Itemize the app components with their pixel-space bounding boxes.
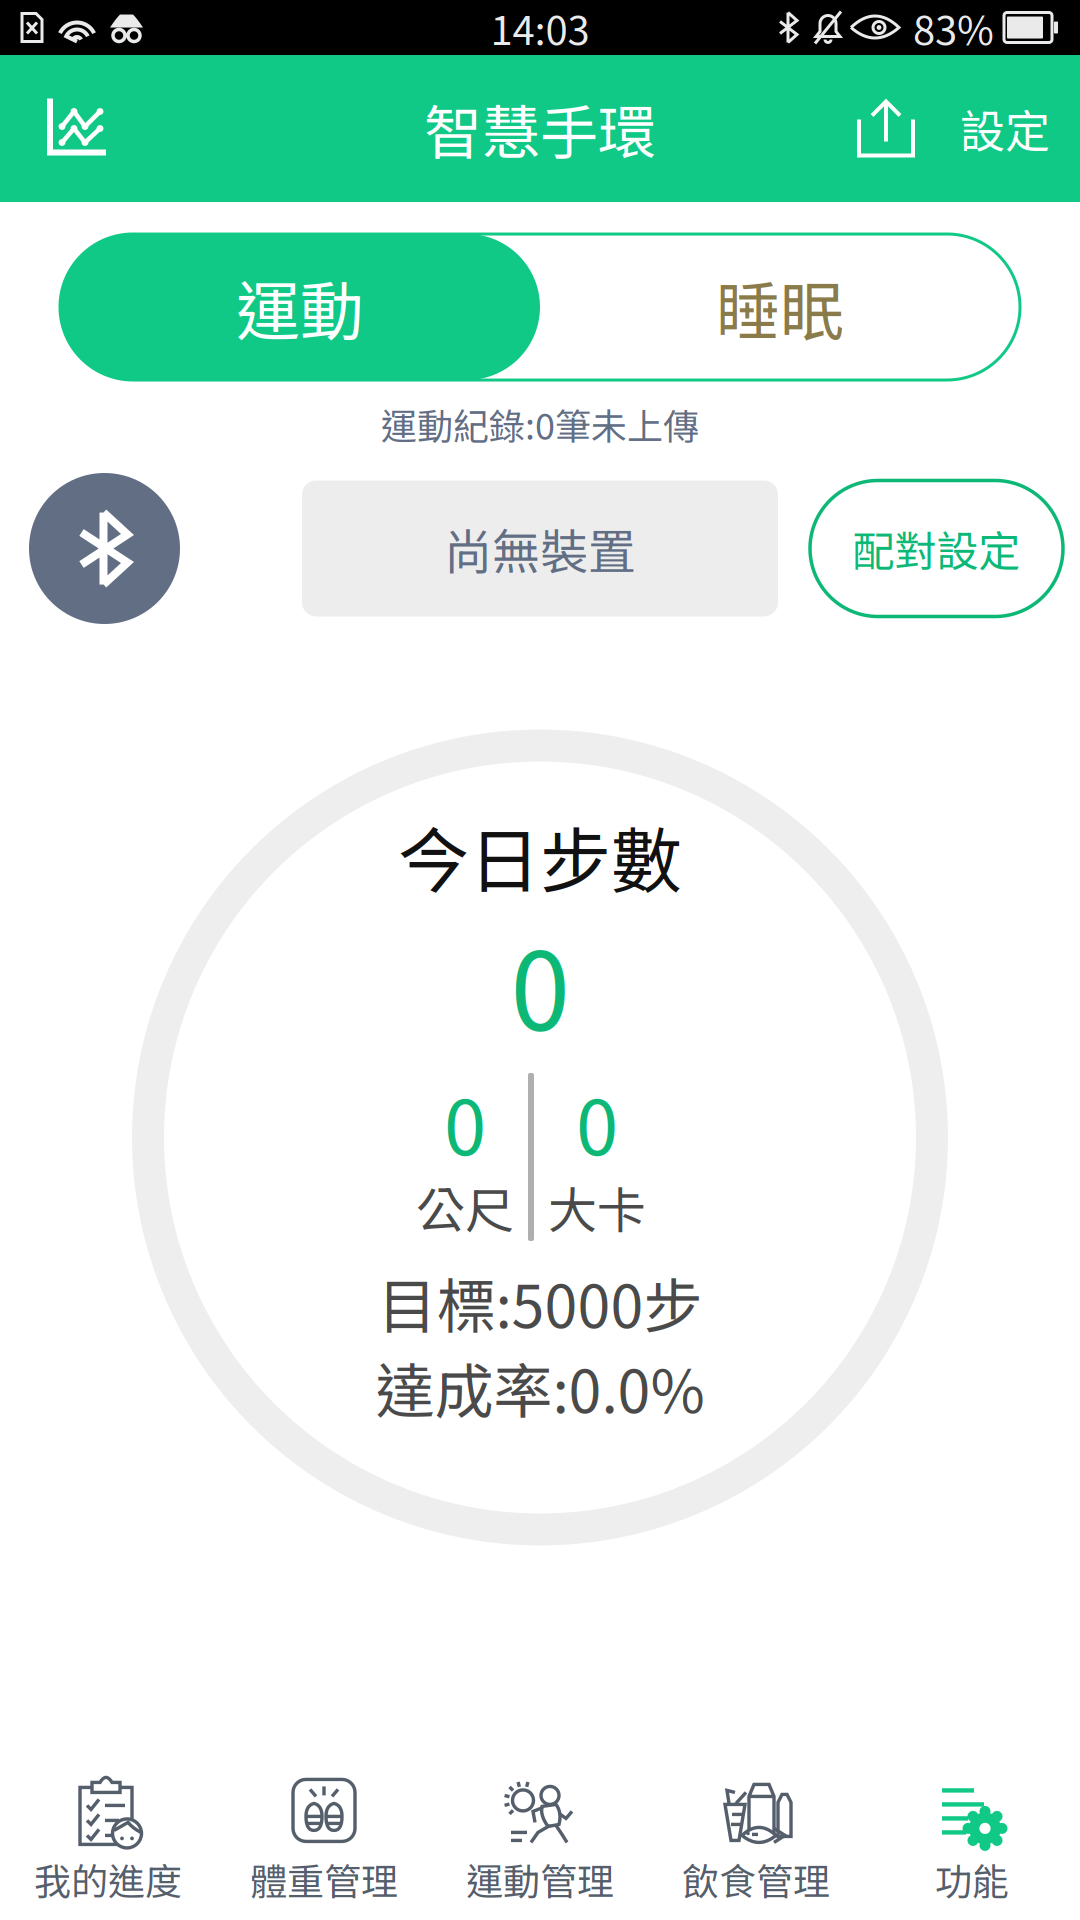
staticText: 運動紀錄:0筆未上傳 (381, 398, 699, 450)
button[interactable]: 配對設定 (810, 480, 1063, 616)
staticText: 運動管理 (466, 1852, 614, 1906)
button[interactable]: 運動 (60, 234, 540, 380)
staticText: 14:03 (490, 0, 589, 56)
staticText: 0 (576, 1067, 618, 1177)
staticText: 目標:5000步 (377, 1259, 702, 1345)
button[interactable]: 設定 (960, 60, 1050, 197)
staticText: 配對設定 (852, 518, 1020, 579)
button[interactable]: 飲食管理 (648, 1764, 864, 1912)
staticText: 體重管理 (250, 1852, 398, 1906)
staticText: 83% (913, 0, 994, 56)
staticText: 尚無裝置 (444, 514, 636, 583)
staticText: 達成率:0.0% (375, 1344, 704, 1430)
staticText: 今日步數 (398, 805, 682, 907)
button[interactable]: Share (842, 57, 930, 199)
button[interactable]: 運動管理 (432, 1764, 648, 1912)
staticText: 0 (444, 1067, 486, 1177)
staticText: 飲食管理 (682, 1852, 830, 1906)
button[interactable]: 體重管理 (216, 1764, 432, 1912)
staticText: 運動 (236, 261, 364, 353)
staticText: 功能 (935, 1852, 1009, 1906)
button[interactable]: 睡眠 (540, 234, 1020, 380)
staticText: 0 (510, 906, 569, 1061)
staticText: 設定 (960, 96, 1050, 161)
staticText: 智慧手環 (424, 86, 656, 170)
staticText: 睡眠 (716, 261, 844, 353)
button[interactable]: 功能 (864, 1764, 1080, 1912)
staticText: 公尺 (416, 1171, 514, 1242)
button[interactable]: 我的進度 (0, 1764, 216, 1912)
staticText: 大卡 (548, 1171, 646, 1242)
button[interactable]: Charts (30, 55, 123, 201)
staticText: 我的進度 (34, 1852, 182, 1906)
